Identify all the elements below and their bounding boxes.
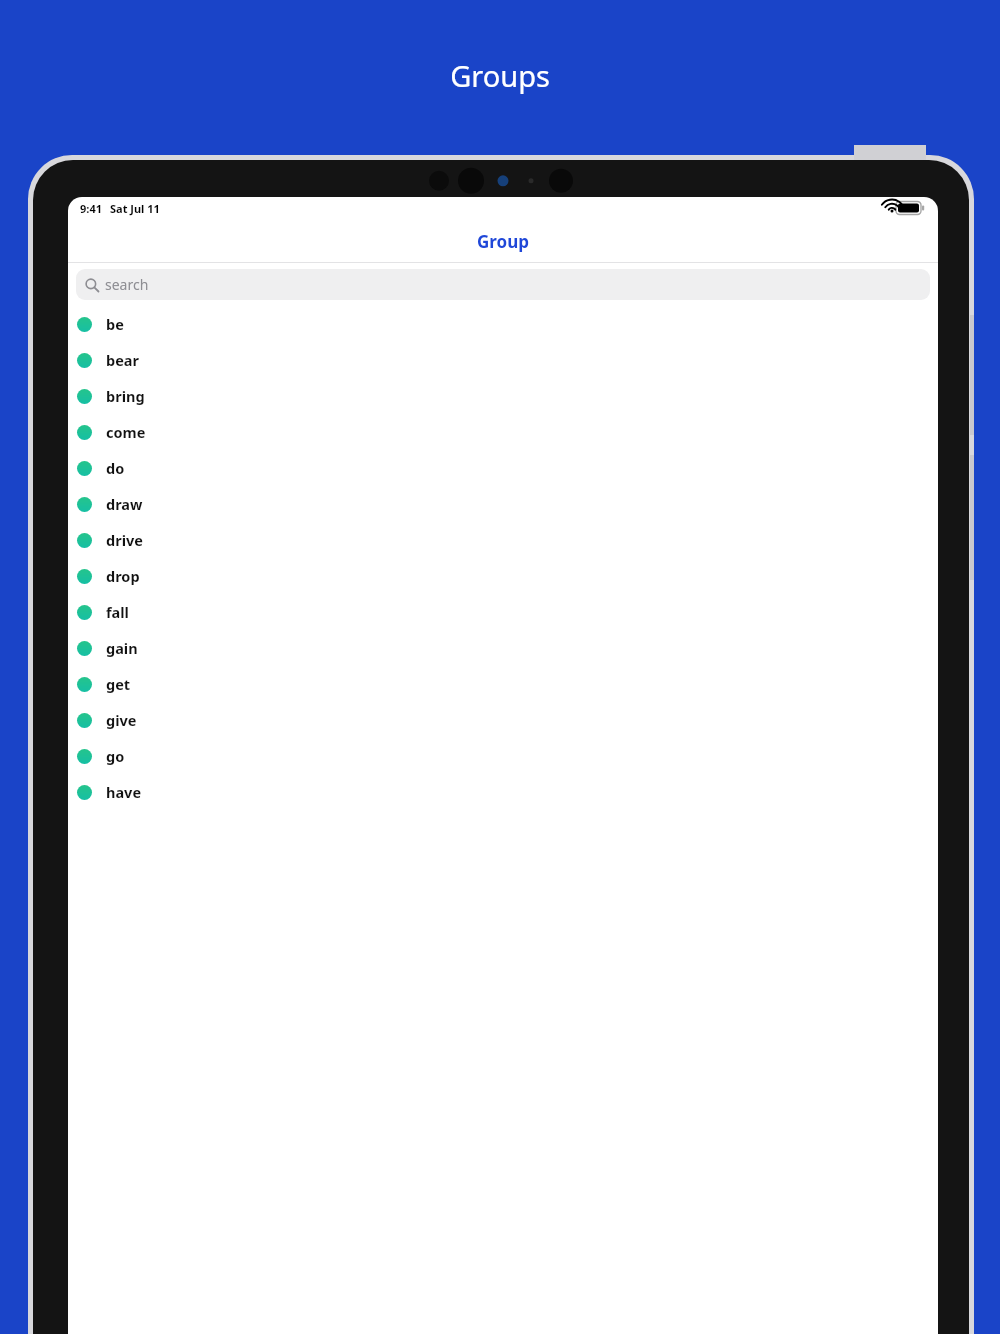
staticText: fall xyxy=(106,602,129,622)
staticText: go xyxy=(106,746,125,766)
button[interactable]: give xyxy=(68,702,938,738)
staticText: get xyxy=(106,674,131,694)
staticText: Group xyxy=(477,230,529,253)
staticText: come xyxy=(106,422,146,442)
button[interactable]: draw xyxy=(68,486,938,522)
staticText: 9:41 xyxy=(80,201,102,216)
button[interactable]: have xyxy=(68,774,938,810)
button[interactable]: do xyxy=(68,450,938,486)
staticText: do xyxy=(106,458,125,478)
staticText: gain xyxy=(106,638,138,658)
button[interactable]: bring xyxy=(68,378,938,414)
staticText: bear xyxy=(106,350,139,370)
button[interactable]: search xyxy=(76,269,930,300)
button[interactable]: go xyxy=(68,738,938,774)
button[interactable]: drop xyxy=(68,558,938,594)
button[interactable]: gain xyxy=(68,630,938,666)
staticText: draw xyxy=(106,494,143,514)
button[interactable]: be xyxy=(68,306,938,342)
staticText: Groups xyxy=(0,56,1000,95)
button[interactable]: bear xyxy=(68,342,938,378)
staticText: give xyxy=(106,710,137,730)
staticText: have xyxy=(106,782,142,802)
staticText: drop xyxy=(106,566,140,586)
staticText: drive xyxy=(106,530,143,550)
button[interactable]: come xyxy=(68,414,938,450)
staticText: Sat Jul 11 xyxy=(110,201,160,216)
staticText: search xyxy=(105,275,149,294)
staticText: be xyxy=(106,314,124,334)
button[interactable]: get xyxy=(68,666,938,702)
button[interactable]: drive xyxy=(68,522,938,558)
button[interactable]: fall xyxy=(68,594,938,630)
staticText: bring xyxy=(106,386,145,406)
